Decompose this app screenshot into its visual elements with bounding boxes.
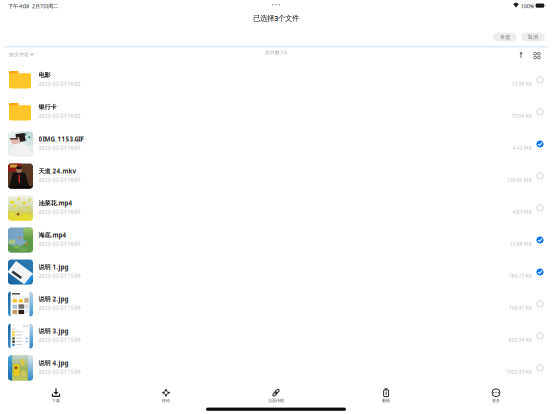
staticText: 更多 bbox=[492, 398, 500, 403]
staticText: 说明 4.jpg bbox=[38, 359, 68, 367]
button[interactable]: 删除 bbox=[331, 384, 441, 408]
staticText: 2023-02-07 15:59 bbox=[38, 272, 80, 279]
staticText: 电影 bbox=[38, 71, 50, 79]
button[interactable]: 银行卡 bbox=[0, 96, 552, 128]
button[interactable]: 排序 bbox=[516, 49, 526, 61]
button[interactable]: 海底.mp4 bbox=[0, 224, 552, 256]
staticText: 海底.mp4 bbox=[38, 231, 66, 239]
staticText: 2023-02-07 16:02 bbox=[38, 112, 80, 119]
staticText: 4.42 MB bbox=[512, 144, 531, 151]
staticText: 2023-02-07 15:59 bbox=[38, 368, 80, 375]
staticText: 按文件名 bbox=[9, 51, 29, 58]
staticText: 2023-02-07 16:07 bbox=[38, 144, 80, 151]
staticText: 全选 bbox=[500, 34, 510, 40]
button[interactable]: 切换网格视图 bbox=[531, 49, 543, 61]
staticText: 2023-02-07 16:07 bbox=[38, 208, 80, 215]
button[interactable]: 说明 3.jpg bbox=[0, 320, 552, 352]
staticText: 768.47 KB bbox=[508, 304, 531, 311]
staticText: 删除 bbox=[382, 398, 390, 403]
button[interactable]: 0IMG_1153.GIF bbox=[0, 128, 552, 160]
staticText: 天道 24.mkv bbox=[38, 167, 76, 175]
staticText: 625.34 KB bbox=[508, 336, 531, 343]
staticText: 当面传输 bbox=[268, 398, 284, 403]
button[interactable]: 全选 bbox=[493, 33, 517, 41]
staticText: 15.88 MB bbox=[509, 240, 531, 247]
button[interactable]: 移动 bbox=[111, 384, 221, 408]
staticText: 说明 3.jpg bbox=[38, 327, 68, 335]
button[interactable]: 下载 bbox=[1, 384, 111, 408]
button[interactable]: 当面传输 bbox=[221, 384, 331, 408]
staticText: 1002.43 KB bbox=[505, 368, 531, 375]
staticText: 13.98 KB bbox=[511, 80, 531, 87]
staticText: 说明 1.jpg bbox=[38, 263, 68, 271]
staticText: 已选择3个文件 bbox=[253, 13, 299, 23]
button[interactable]: 说明 4.jpg bbox=[0, 352, 552, 384]
button[interactable]: 说明 1.jpg bbox=[0, 256, 552, 288]
button[interactable]: 取消 bbox=[521, 33, 545, 41]
staticText: 说明 2.jpg bbox=[38, 295, 68, 303]
staticText: 油菜花.mp4 bbox=[38, 199, 72, 207]
staticText: 文件数:14 bbox=[265, 49, 287, 56]
staticText: 100% bbox=[521, 2, 534, 10]
staticText: 2023-02-07 16:02 bbox=[38, 80, 80, 87]
staticText: 移动 bbox=[162, 398, 170, 403]
button[interactable]: 电影 bbox=[0, 64, 552, 96]
button[interactable]: 说明 2.jpg bbox=[0, 288, 552, 320]
staticText: 2023-02-07 16:07 bbox=[38, 240, 80, 247]
staticText: 下载 bbox=[52, 398, 60, 403]
staticText: 取消 bbox=[528, 34, 538, 40]
staticText: 0IMG_1153.GIF bbox=[38, 135, 83, 143]
button[interactable]: 天道 24.mkv bbox=[0, 160, 552, 192]
staticText: 下午 4:08 2月7日周二 bbox=[8, 2, 58, 10]
button[interactable]: 按文件名 bbox=[9, 49, 35, 61]
staticText: 2023-02-07 15:59 bbox=[38, 336, 80, 343]
staticText: 10.54 KB bbox=[511, 112, 531, 119]
button[interactable]: 油菜花.mp4 bbox=[0, 192, 552, 224]
staticText: 138.06 MB bbox=[506, 176, 531, 183]
staticText: 4.83 MB bbox=[512, 208, 531, 215]
staticText: 银行卡 bbox=[38, 103, 56, 111]
staticText: 784.73 KB bbox=[508, 272, 531, 279]
button[interactable]: 更多 bbox=[441, 384, 551, 408]
staticText: 2023-02-07 15:59 bbox=[38, 304, 80, 311]
staticText: 2023-02-07 16:07 bbox=[38, 176, 80, 183]
